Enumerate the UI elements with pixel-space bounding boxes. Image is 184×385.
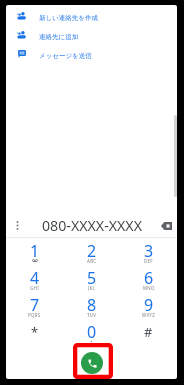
staticText: 1 [30,240,40,262]
staticText: PQRS [28,312,41,318]
staticText: MNO [143,285,155,291]
staticText: # [144,323,153,341]
button[interactable]: 4 [6,265,63,292]
button[interactable]: 7 [6,292,63,319]
staticText: 7 [30,294,40,316]
staticText: GHI [30,285,39,291]
staticText: DEF [144,258,153,264]
button[interactable]: 2 [63,238,120,265]
staticText: 5 [87,267,97,289]
staticText: JKL [88,285,96,291]
button[interactable]: 8 [63,292,120,319]
staticText: TUV [87,312,97,318]
staticText: 8 [87,294,97,316]
button[interactable]: 6 [120,265,177,292]
button[interactable]: Call [81,352,103,374]
staticText: ABC [87,258,97,264]
button[interactable]: 新しい連絡先を作成 [6,8,177,27]
button[interactable]: More options [6,212,29,239]
button[interactable]: 1 [6,238,63,265]
staticText: 新しい連絡先を作成 [39,14,98,22]
button[interactable]: # [120,319,177,346]
button[interactable]: メッセージを送信 [6,46,177,65]
staticText: 6 [144,267,154,289]
button[interactable]: 0 [63,319,120,346]
staticText: メッセージを送信 [39,52,92,60]
staticText: 080-XXXX-XXXX [42,216,142,235]
staticText: + [90,339,93,345]
button[interactable]: * [6,319,63,346]
button[interactable]: 連絡先に追加 [6,27,177,46]
staticText: 3 [144,240,154,262]
staticText: 4 [30,267,40,289]
button[interactable]: 3 [120,238,177,265]
staticText: WXYZ [142,312,156,318]
button[interactable]: 9 [120,292,177,319]
staticText: * [31,323,39,341]
staticText: 連絡先に追加 [39,33,79,41]
staticText: 2 [87,240,97,262]
button[interactable]: 5 [63,265,120,292]
button[interactable]: Backspace [155,212,177,239]
staticText: 0 [87,321,97,343]
staticText: 9 [144,294,154,316]
